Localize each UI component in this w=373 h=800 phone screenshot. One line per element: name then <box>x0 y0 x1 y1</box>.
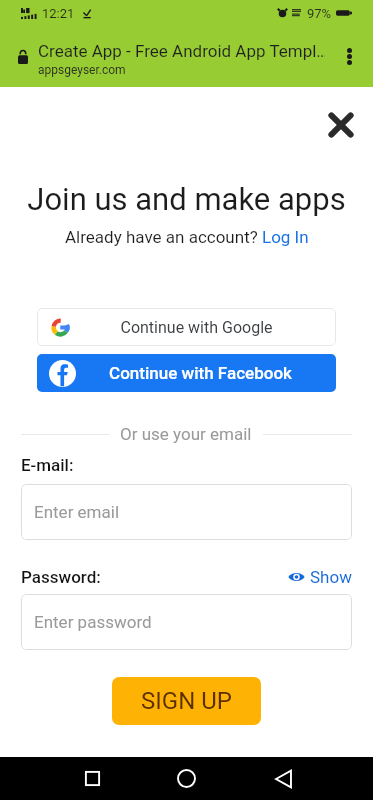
button[interactable]: SIGN UP <box>112 677 261 725</box>
button[interactable]: Log In <box>262 227 309 247</box>
staticText: 97% <box>307 6 332 21</box>
button[interactable]: Continue with Facebook <box>37 354 336 392</box>
staticText: Or use your email <box>120 424 252 444</box>
staticText: Password: <box>21 567 101 587</box>
staticText: E-mail: <box>21 455 74 475</box>
staticText: Join us and make apps <box>0 181 373 217</box>
staticText: Continue with Google <box>70 318 323 337</box>
staticText: Enter email <box>34 502 120 522</box>
staticText: appsgeyser.com <box>38 63 126 77</box>
staticText: Show <box>310 567 352 587</box>
button[interactable]: Back <box>259 757 307 800</box>
button[interactable]: Close <box>318 102 363 147</box>
staticText: 12:21 <box>42 6 75 21</box>
staticText: Create App - Free Android App Templ… <box>38 41 325 61</box>
staticText: Log In <box>262 227 309 247</box>
button[interactable]: Enter password <box>21 594 352 650</box>
button[interactable]: Recents <box>68 757 116 800</box>
staticText: SIGN UP <box>141 687 232 715</box>
staticText: Continue with Facebook <box>76 363 325 383</box>
button[interactable]: More options <box>325 26 373 87</box>
staticText: Already have an account? <box>65 227 262 247</box>
button[interactable]: Enter email <box>21 484 352 540</box>
button[interactable]: Continue with Google <box>37 308 336 346</box>
staticText: Enter password <box>34 612 152 632</box>
button[interactable]: Home <box>162 757 210 800</box>
button[interactable]: Show <box>288 567 352 587</box>
